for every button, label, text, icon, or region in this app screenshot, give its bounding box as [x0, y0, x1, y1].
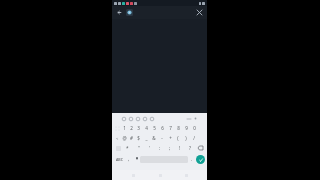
button[interactable]: :	[155, 143, 165, 153]
button[interactable]: 4	[142, 123, 150, 133]
button[interactable]: 3	[135, 123, 142, 133]
button[interactable]: $	[135, 133, 142, 143]
button[interactable]: Keyboard tool 1	[127, 115, 134, 122]
staticText: /	[193, 135, 195, 141]
button[interactable]: '	[144, 143, 155, 153]
button[interactable]: Enter	[196, 155, 205, 164]
staticText: 3	[137, 125, 140, 131]
button[interactable]: 1	[121, 123, 128, 133]
staticText: 2	[130, 125, 133, 131]
staticText: ,	[128, 156, 130, 162]
button[interactable]: +	[166, 133, 174, 143]
button[interactable]	[126, 9, 133, 16]
staticText: 6	[161, 125, 164, 131]
staticText: ABC	[116, 157, 123, 162]
button[interactable]: More	[185, 115, 192, 122]
staticText: 4	[145, 125, 148, 131]
button[interactable]: Keyboard tool 4	[148, 115, 155, 122]
button[interactable]: &	[150, 133, 158, 143]
button[interactable]: !	[175, 143, 185, 153]
button[interactable]: Home	[155, 170, 165, 180]
button[interactable]: Keyboard tool 0	[120, 115, 127, 122]
button[interactable]: ?	[185, 143, 195, 153]
staticText: #	[130, 135, 133, 141]
staticText: ;	[169, 145, 171, 151]
button[interactable]: /	[190, 133, 198, 143]
button[interactable]: _	[142, 133, 150, 143]
staticText: <	[116, 136, 119, 141]
button[interactable]: -	[158, 133, 166, 143]
button[interactable]: @	[121, 133, 128, 143]
button[interactable]: Voice input	[133, 154, 140, 164]
button[interactable]: #	[128, 133, 135, 143]
button[interactable]: 6	[158, 123, 166, 133]
button[interactable]: Back	[115, 8, 124, 17]
button[interactable]: Keyboard tool 3	[141, 115, 148, 122]
button[interactable]: *	[122, 143, 133, 153]
button[interactable]: 8	[174, 123, 182, 133]
button[interactable]: ,	[125, 154, 133, 164]
button[interactable]: ;	[165, 143, 175, 153]
button[interactable]: (	[174, 133, 182, 143]
button[interactable]: Symbols	[114, 143, 122, 153]
button[interactable]: 7	[166, 123, 174, 133]
staticText: )	[185, 135, 187, 141]
staticText: 9	[185, 125, 188, 131]
button[interactable]: Close	[195, 8, 204, 17]
staticText: *	[126, 145, 129, 151]
staticText: (	[177, 135, 179, 141]
staticText: 8	[177, 125, 180, 131]
button[interactable]: )	[182, 133, 190, 143]
staticText: +	[169, 135, 172, 141]
staticText: 0	[193, 125, 196, 131]
button[interactable]: Recents	[181, 170, 191, 180]
staticText: $	[137, 135, 140, 141]
staticText: "	[138, 145, 140, 151]
staticText: '	[149, 145, 151, 151]
button[interactable]: 2	[128, 123, 135, 133]
staticText: :	[159, 145, 161, 151]
button[interactable]: Settings	[192, 115, 199, 122]
button[interactable]: "	[133, 143, 144, 153]
staticText: -	[161, 135, 163, 141]
staticText: ?	[189, 145, 191, 151]
staticText: 7	[169, 125, 172, 131]
staticText: 5	[153, 125, 156, 131]
button[interactable]: 0	[190, 123, 198, 133]
staticText: &	[152, 135, 156, 141]
staticText: 1	[123, 125, 126, 131]
button[interactable]: 9	[182, 123, 190, 133]
button[interactable]: Keyboard tool 2	[134, 115, 141, 122]
button[interactable]: Back	[128, 170, 138, 180]
button[interactable]: <	[114, 133, 121, 143]
button[interactable]: .	[188, 154, 196, 164]
button[interactable]: ABC	[114, 154, 125, 164]
staticText: @	[122, 135, 127, 141]
staticText: _	[145, 135, 148, 141]
staticText: .	[191, 156, 193, 162]
button[interactable]: Backspace	[195, 143, 205, 153]
staticText: !	[179, 145, 181, 151]
button[interactable]: 5	[150, 123, 158, 133]
